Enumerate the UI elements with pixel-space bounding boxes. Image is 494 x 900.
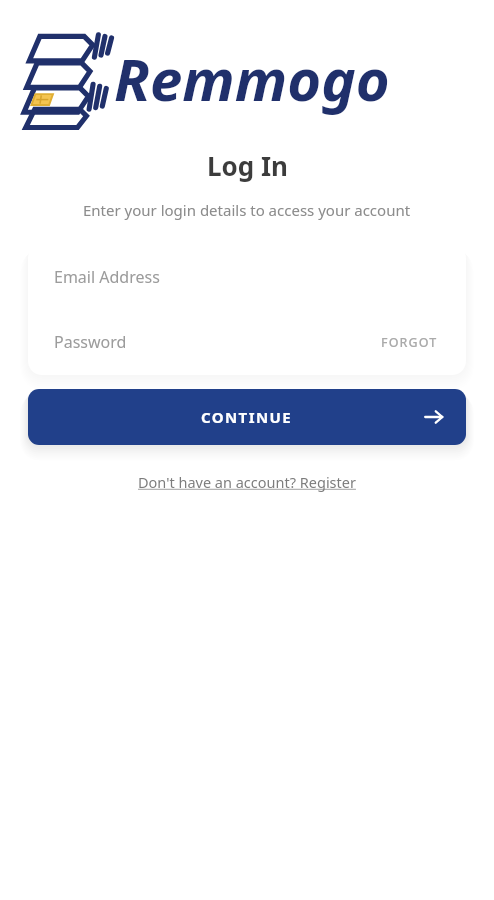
button[interactable]: CONTINUE [28,389,466,445]
staticText: Don't have an account? Register [138,472,356,492]
staticText: Email Address [54,266,160,288]
staticText: Remmogo [114,39,390,118]
staticText: Enter your login details to access your … [83,200,411,220]
button[interactable]: Password [28,309,466,375]
other: Continue [423,406,445,428]
button[interactable]: Don't have an account? Register [130,466,364,498]
staticText: Log In [207,148,288,183]
staticText: FORGOT [381,334,438,351]
staticText: CONTINUE [201,407,293,427]
button[interactable]: Email Address [28,244,466,309]
button[interactable]: FORGOT [379,328,440,357]
staticText: Password [54,331,127,353]
